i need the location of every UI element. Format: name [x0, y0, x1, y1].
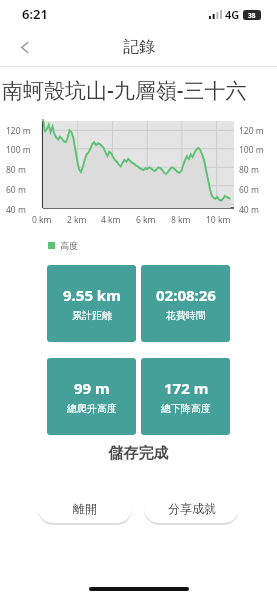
- button[interactable]: 99 m: [47, 358, 136, 435]
- staticText: 02:08:26: [156, 285, 216, 305]
- staticText: 總下降高度: [161, 402, 211, 415]
- staticText: 80 m: [6, 164, 26, 176]
- button[interactable]: 分享成就: [144, 493, 239, 523]
- button[interactable]: 172 m: [141, 358, 230, 435]
- button[interactable]: Back: [8, 30, 42, 64]
- staticText: 4G: [225, 7, 240, 22]
- staticText: 99 m: [74, 378, 110, 398]
- staticText: 120 m: [239, 125, 264, 137]
- staticText: 38: [248, 11, 256, 20]
- button[interactable]: 離開: [38, 493, 132, 523]
- staticText: 4 km: [101, 214, 121, 226]
- staticText: 9.55 km: [63, 285, 121, 305]
- staticText: 80 m: [239, 164, 259, 176]
- staticText: 南蚵殼坑山-九層嶺-三十六: [2, 76, 247, 105]
- staticText: 累計距離: [72, 309, 112, 322]
- staticText: 儲存完成: [0, 444, 277, 463]
- staticText: 花費時間: [166, 309, 206, 322]
- button[interactable]: 9.55 km: [47, 265, 136, 342]
- staticText: 6 km: [136, 214, 156, 226]
- staticText: 6:21: [22, 5, 48, 23]
- staticText: 高度: [60, 240, 78, 251]
- staticText: 0 km: [32, 214, 52, 226]
- staticText: 40 m: [6, 204, 26, 216]
- staticText: 總爬升高度: [67, 402, 117, 415]
- staticText: 100 m: [239, 144, 264, 156]
- staticText: 2 km: [67, 214, 87, 226]
- staticText: 100 m: [6, 144, 31, 156]
- staticText: 172 m: [164, 378, 209, 398]
- staticText: 10 km: [206, 214, 231, 226]
- staticText: 120 m: [6, 125, 31, 137]
- button[interactable]: 02:08:26: [141, 265, 230, 342]
- staticText: 60 m: [239, 184, 259, 196]
- staticText: 8 km: [171, 214, 191, 226]
- staticText: 40 m: [239, 204, 259, 216]
- staticText: 60 m: [6, 184, 26, 196]
- staticText: 記錄: [123, 37, 155, 57]
- staticText: 離開: [73, 501, 97, 516]
- staticText: 分享成就: [168, 501, 216, 516]
